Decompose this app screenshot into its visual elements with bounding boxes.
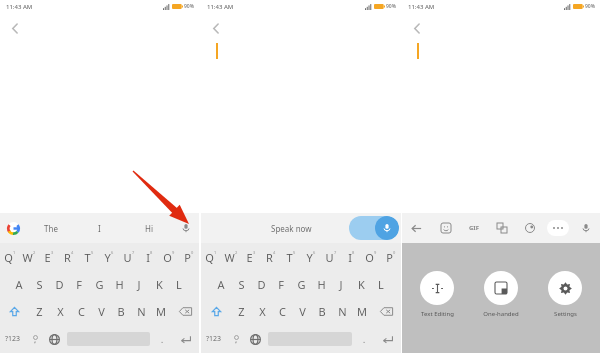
button[interactable]: Z — [29, 298, 50, 325]
button[interactable]: H — [311, 271, 331, 298]
button[interactable]: Hi — [124, 213, 173, 243]
button[interactable]: L — [169, 271, 189, 298]
button[interactable]: S — [29, 271, 49, 298]
button[interactable]: GIF — [460, 213, 488, 243]
button[interactable]: N — [131, 298, 151, 325]
button[interactable]: B — [111, 298, 131, 325]
staticText: A — [15, 277, 23, 292]
button[interactable]: V — [91, 298, 111, 325]
staticText: 7 — [132, 250, 135, 255]
button[interactable]: L — [371, 271, 391, 298]
button[interactable]: Translate — [488, 213, 516, 243]
button[interactable]: One-handed — [475, 271, 527, 318]
staticText: GIF — [469, 224, 479, 232]
button[interactable]: I — [139, 243, 159, 271]
staticText: P — [184, 250, 191, 265]
button[interactable]: Back — [2, 15, 28, 41]
staticText: J — [137, 277, 141, 292]
button[interactable]: R — [59, 243, 79, 271]
button[interactable]: Back — [404, 15, 430, 41]
button[interactable]: O — [159, 243, 179, 271]
button[interactable]: Backspace — [171, 298, 199, 325]
button[interactable]: C — [71, 298, 91, 325]
button[interactable]: J — [129, 271, 149, 298]
button[interactable]: Voice input — [572, 213, 600, 243]
button[interactable]: Z — [231, 298, 252, 325]
button[interactable]: W — [19, 243, 39, 271]
button[interactable]: O — [361, 243, 381, 271]
button[interactable]: Emoji — [227, 325, 246, 353]
button[interactable]: W — [221, 243, 241, 271]
button[interactable]: Q — [0, 243, 19, 271]
staticText: The — [44, 223, 58, 234]
button[interactable]: P — [179, 243, 199, 271]
button[interactable]: M — [352, 298, 372, 325]
button[interactable]: B — [312, 298, 332, 325]
button[interactable]: G — [291, 271, 311, 298]
button[interactable]: Text Editing — [411, 271, 463, 318]
button[interactable]: Enter — [172, 325, 199, 353]
button[interactable]: Q — [201, 243, 221, 271]
button[interactable]: S — [231, 271, 251, 298]
button[interactable]: T — [79, 243, 99, 271]
button[interactable]: P — [381, 243, 401, 271]
button[interactable]: R — [261, 243, 281, 271]
staticText: N — [338, 304, 347, 319]
button[interactable]: Backspace — [372, 298, 401, 325]
button[interactable]: U — [321, 243, 341, 271]
button[interactable]: K — [149, 271, 169, 298]
button[interactable]: F — [69, 271, 89, 298]
button[interactable]: K — [351, 271, 371, 298]
button[interactable]: D — [251, 271, 271, 298]
staticText: E — [246, 250, 253, 265]
staticText: 11:43 AM — [207, 3, 234, 11]
button[interactable]: H — [109, 271, 129, 298]
button[interactable]: M — [151, 298, 171, 325]
button[interactable]: Change language — [45, 325, 64, 353]
button[interactable]: U — [119, 243, 139, 271]
button[interactable]: C — [272, 298, 292, 325]
button[interactable]: A — [9, 271, 29, 298]
button[interactable]: Themes — [516, 213, 544, 243]
button[interactable]: I — [75, 213, 124, 243]
staticText: 1 — [13, 250, 16, 255]
button[interactable]: N — [332, 298, 352, 325]
button[interactable]: J — [331, 271, 351, 298]
button[interactable]: The — [26, 213, 75, 243]
button[interactable]: Back — [402, 213, 431, 243]
button[interactable]: Shift — [0, 298, 29, 325]
button[interactable]: D — [49, 271, 69, 298]
staticText: H — [115, 277, 124, 292]
button[interactable]: V — [292, 298, 312, 325]
button[interactable]: X — [252, 298, 272, 325]
button[interactable]: Shift — [201, 298, 231, 325]
staticText: T — [286, 250, 293, 265]
button[interactable]: E — [39, 243, 59, 271]
button[interactable]: E — [241, 243, 261, 271]
button[interactable]: F — [271, 271, 291, 298]
button[interactable]: I — [341, 243, 361, 271]
button[interactable]: Emoji — [26, 325, 45, 353]
button[interactable]: Back — [203, 15, 229, 41]
button[interactable]: . — [355, 325, 374, 353]
button[interactable]: Google — [0, 213, 26, 243]
button[interactable]: Y — [99, 243, 119, 271]
button[interactable]: T — [281, 243, 301, 271]
button[interactable]: Enter — [374, 325, 401, 353]
staticText: I — [146, 250, 150, 265]
button[interactable]: Stickers — [431, 213, 460, 243]
button[interactable]: G — [89, 271, 109, 298]
button[interactable]: Change language — [246, 325, 265, 353]
button[interactable]: ?123 — [0, 325, 26, 353]
button[interactable]: Settings — [539, 271, 591, 318]
button[interactable]: More options — [544, 213, 572, 243]
button[interactable]: A — [211, 271, 231, 298]
button[interactable]: Y — [301, 243, 321, 271]
button[interactable]: Voice input — [173, 213, 199, 243]
button[interactable]: Voice input active — [349, 216, 399, 240]
button[interactable]: X — [50, 298, 71, 325]
button[interactable]: ?123 — [201, 325, 227, 353]
button[interactable]: . — [153, 325, 172, 353]
